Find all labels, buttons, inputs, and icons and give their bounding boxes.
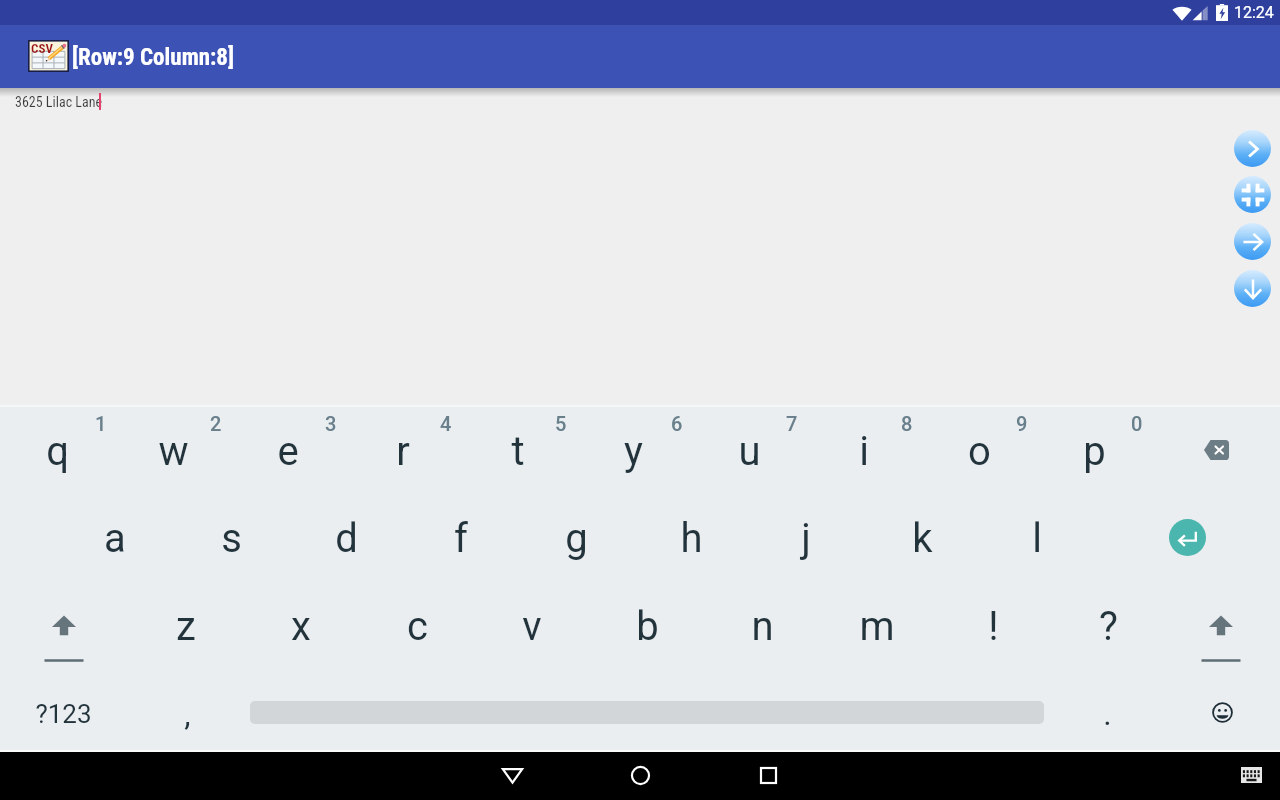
staticText: u: [738, 428, 761, 475]
button[interactable]: g: [519, 510, 633, 566]
button[interactable]: f: [404, 510, 518, 566]
button[interactable]: Backspace: [1192, 428, 1240, 472]
button[interactable]: b: [590, 598, 704, 654]
button[interactable]: w: [116, 423, 230, 479]
staticText: 3625 Lilac Lane: [15, 94, 103, 110]
staticText: d: [335, 515, 358, 562]
staticText: x: [291, 603, 311, 650]
button[interactable]: Collapse: [1234, 176, 1271, 213]
staticText: ,: [184, 695, 191, 733]
staticText: 7: [786, 412, 798, 435]
button[interactable]: s: [174, 510, 288, 566]
staticText: t: [511, 428, 525, 475]
button[interactable]: h: [634, 510, 748, 566]
staticText: a: [104, 515, 126, 562]
staticText: f: [454, 515, 468, 562]
button[interactable]: e: [231, 423, 345, 479]
staticText: 2: [210, 412, 222, 435]
button[interactable]: Switch keyboard: [1230, 754, 1272, 796]
staticText: q: [46, 428, 69, 475]
button[interactable]: Move right: [1234, 223, 1271, 260]
button[interactable]: l: [980, 510, 1094, 566]
staticText: 0: [1131, 412, 1143, 435]
button[interactable]: Home: [616, 751, 664, 799]
staticText: v: [522, 603, 542, 650]
button[interactable]: ?123: [6, 686, 120, 742]
staticText: p: [1083, 428, 1106, 475]
button[interactable]: r: [346, 423, 460, 479]
button[interactable]: !: [936, 598, 1050, 654]
staticText: CSV: [31, 41, 53, 56]
button[interactable]: o: [922, 423, 1036, 479]
button[interactable]: v: [475, 598, 589, 654]
button[interactable]: c: [360, 598, 474, 654]
staticText: y: [624, 428, 643, 475]
staticText: 4: [440, 412, 452, 435]
staticText: i: [859, 428, 869, 475]
staticText: 6: [671, 412, 683, 435]
button[interactable]: t: [461, 423, 575, 479]
button[interactable]: ?: [1051, 598, 1165, 654]
button[interactable]: z: [129, 598, 243, 654]
button[interactable]: Shift: [1193, 608, 1249, 668]
button[interactable]: d: [289, 510, 403, 566]
staticText: k: [912, 515, 933, 562]
staticText: e: [277, 428, 299, 475]
staticText: l: [1032, 515, 1042, 562]
staticText: 8: [901, 412, 913, 435]
staticText: 9: [1016, 412, 1028, 435]
button[interactable]: m: [820, 598, 934, 654]
button[interactable]: 3625 Lilac Lane: [0, 94, 1280, 118]
button[interactable]: n: [705, 598, 819, 654]
staticText: 3: [325, 412, 337, 435]
staticText: m: [859, 603, 895, 650]
staticText: o: [968, 428, 991, 475]
staticText: s: [221, 515, 242, 562]
button[interactable]: y: [576, 423, 690, 479]
button[interactable]: Shift: [36, 608, 92, 668]
staticText: r: [396, 428, 410, 475]
button[interactable]: .: [1050, 686, 1164, 742]
button[interactable]: i: [807, 423, 921, 479]
button[interactable]: Back: [488, 751, 536, 799]
button[interactable]: k: [865, 510, 979, 566]
staticText: w: [158, 428, 189, 475]
button[interactable]: a: [58, 510, 172, 566]
button[interactable]: Emoji: [1201, 691, 1243, 733]
button[interactable]: x: [244, 598, 358, 654]
staticText: 5: [555, 412, 567, 435]
staticText: n: [751, 603, 774, 650]
staticText: j: [801, 515, 811, 562]
button[interactable]: ,: [130, 686, 244, 742]
staticText: [Row:9 Column:8]: [72, 44, 235, 71]
staticText: .: [1103, 695, 1112, 733]
button[interactable]: j: [749, 510, 863, 566]
staticText: 1: [95, 412, 107, 435]
staticText: ?123: [35, 699, 92, 729]
button[interactable]: Enter: [1169, 519, 1206, 556]
button[interactable]: q: [0, 423, 114, 479]
button[interactable]: CSV file: [28, 40, 69, 72]
staticText: c: [407, 603, 428, 650]
button[interactable]: p: [1037, 423, 1151, 479]
button[interactable]: Next field: [1234, 130, 1271, 167]
staticText: b: [636, 603, 659, 650]
staticText: 12:24: [1234, 3, 1274, 22]
staticText: h: [680, 515, 703, 562]
button[interactable]: u: [692, 423, 806, 479]
button[interactable]: Recents: [744, 751, 792, 799]
staticText: g: [565, 515, 588, 562]
staticText: !: [988, 603, 999, 650]
staticText: ?: [1099, 603, 1118, 650]
button[interactable]: Move down: [1234, 270, 1271, 307]
staticText: z: [176, 603, 196, 650]
